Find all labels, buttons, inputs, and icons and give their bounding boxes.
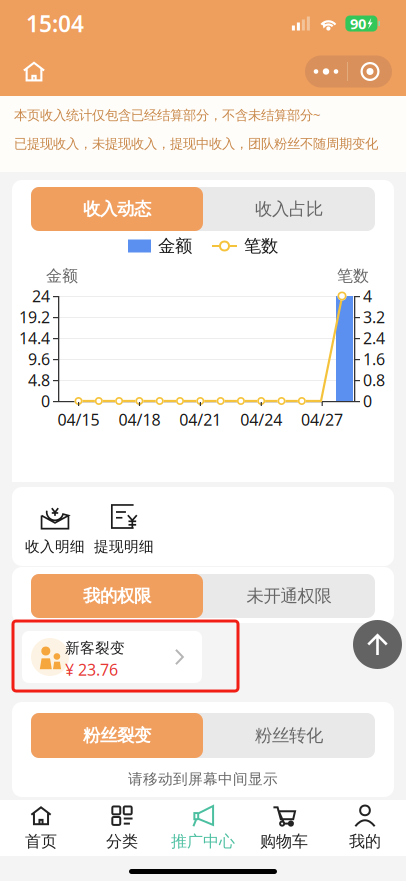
- button[interactable]: 购物车: [243, 802, 324, 854]
- button[interactable]: 收入动态: [31, 187, 203, 231]
- staticText: 请移动到屏幕中间显示: [128, 770, 278, 788]
- button[interactable]: Home: [14, 51, 54, 91]
- staticText: 3.2: [363, 306, 385, 328]
- staticText: 04/21: [179, 409, 221, 430]
- staticText: 分类: [106, 832, 138, 851]
- staticText: 0: [41, 390, 50, 412]
- button[interactable]: 分类: [81, 802, 162, 854]
- staticText: 粉丝转化: [255, 725, 323, 746]
- staticText: 2.4: [363, 327, 385, 349]
- staticText: 0: [363, 390, 372, 412]
- staticText: 19.2: [19, 306, 50, 328]
- staticText: 笔数: [244, 235, 278, 257]
- button[interactable]: Back to top: [353, 620, 402, 669]
- staticText: 04/18: [118, 409, 160, 430]
- staticText: 4.8: [28, 369, 50, 391]
- button[interactable]: 我的权限: [31, 574, 203, 618]
- staticText: 首页: [25, 832, 57, 851]
- staticText: 收入明细: [25, 537, 85, 555]
- staticText: 本页收入统计仅包含已经结算部分，不含未结算部分~: [14, 106, 321, 124]
- staticText: 0.8: [363, 369, 385, 391]
- button[interactable]: More options: [305, 55, 392, 87]
- button[interactable]: 新客裂变: [22, 631, 202, 683]
- staticText: 未开通权限: [246, 585, 331, 607]
- staticText: 我的: [349, 832, 381, 851]
- staticText: 04/24: [240, 409, 282, 430]
- staticText: 04/15: [57, 409, 99, 430]
- staticText: 已提现收入，未提现收入，提现中收入，团队粉丝不随周期变化: [14, 136, 378, 152]
- button[interactable]: 粉丝转化: [203, 713, 375, 758]
- button[interactable]: 推广中心: [162, 802, 243, 854]
- staticText: 90: [350, 14, 366, 33]
- button[interactable]: 收入明细: [21, 498, 89, 558]
- staticText: 笔数: [337, 266, 369, 286]
- button[interactable]: 我的: [324, 802, 405, 854]
- staticText: 14.4: [19, 327, 50, 349]
- button[interactable]: 粉丝裂变: [31, 713, 203, 758]
- staticText: 1.6: [363, 348, 385, 370]
- staticText: 新客裂变: [65, 639, 125, 657]
- staticText: 推广中心: [171, 832, 235, 851]
- staticText: ¥ 23.76: [65, 659, 118, 680]
- staticText: 9.6: [28, 348, 50, 370]
- button[interactable]: 收入占比: [203, 187, 375, 231]
- staticText: 24: [32, 285, 50, 307]
- button[interactable]: 提现明细: [90, 498, 158, 558]
- staticText: 15:04: [26, 8, 84, 38]
- staticText: 4: [363, 285, 372, 307]
- staticText: 金额: [158, 235, 192, 257]
- staticText: 04/27: [301, 409, 343, 430]
- staticText: 购物车: [260, 832, 308, 851]
- staticText: 金额: [46, 266, 78, 286]
- button[interactable]: 未开通权限: [203, 574, 375, 618]
- button[interactable]: 首页: [0, 802, 81, 854]
- staticText: 提现明细: [94, 537, 154, 555]
- staticText: 收入动态: [83, 198, 151, 220]
- staticText: 粉丝裂变: [83, 725, 151, 746]
- staticText: 我的权限: [83, 585, 151, 607]
- staticText: 收入占比: [255, 198, 323, 220]
